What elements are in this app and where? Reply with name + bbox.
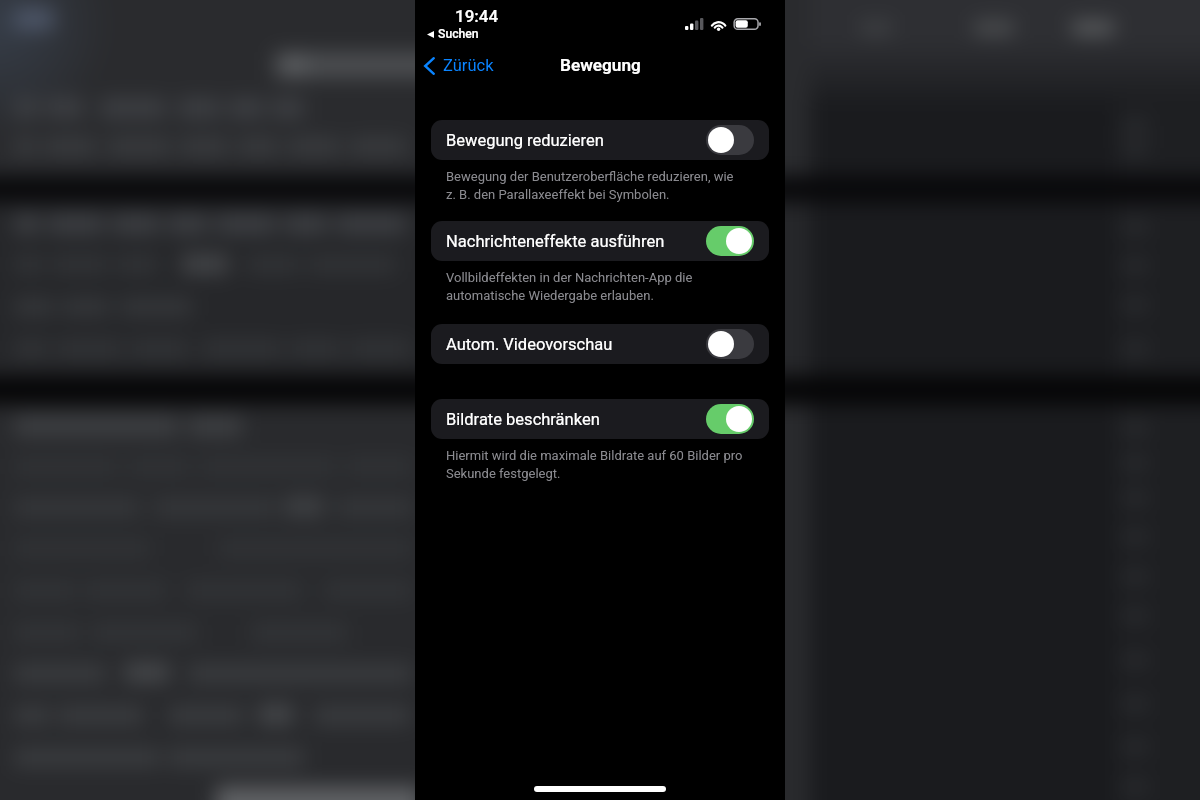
staticText: Vollbildeffekten in der Nachrichten-App … [446, 270, 693, 303]
staticText: Zürück [443, 56, 494, 75]
staticText: Bildrate beschränken [446, 410, 600, 429]
button[interactable]: Suchen [427, 27, 479, 41]
button[interactable]: Autom. Videovorschau [431, 324, 769, 364]
button[interactable]: Bildrate beschränken [431, 399, 769, 439]
button[interactable]: Nachrichteneffekte ausführen [431, 221, 769, 261]
button[interactable]: Zürück [424, 56, 494, 75]
staticText: Autom. Videovorschau [446, 335, 613, 354]
button[interactable]: Bewegung reduzieren [431, 120, 769, 160]
other: Status [685, 18, 761, 31]
staticText: Hiermit wird die maximale Bildrate auf 6… [446, 448, 743, 481]
staticText: Bewegung [560, 55, 641, 75]
staticText: Bewegung der Benutzeroberfläche reduzier… [446, 169, 734, 202]
staticText: Suchen [438, 27, 479, 41]
staticText: 19:44 [455, 6, 499, 26]
staticText: Bewegung reduzieren [446, 131, 604, 150]
staticText: Nachrichteneffekte ausführen [446, 232, 665, 251]
